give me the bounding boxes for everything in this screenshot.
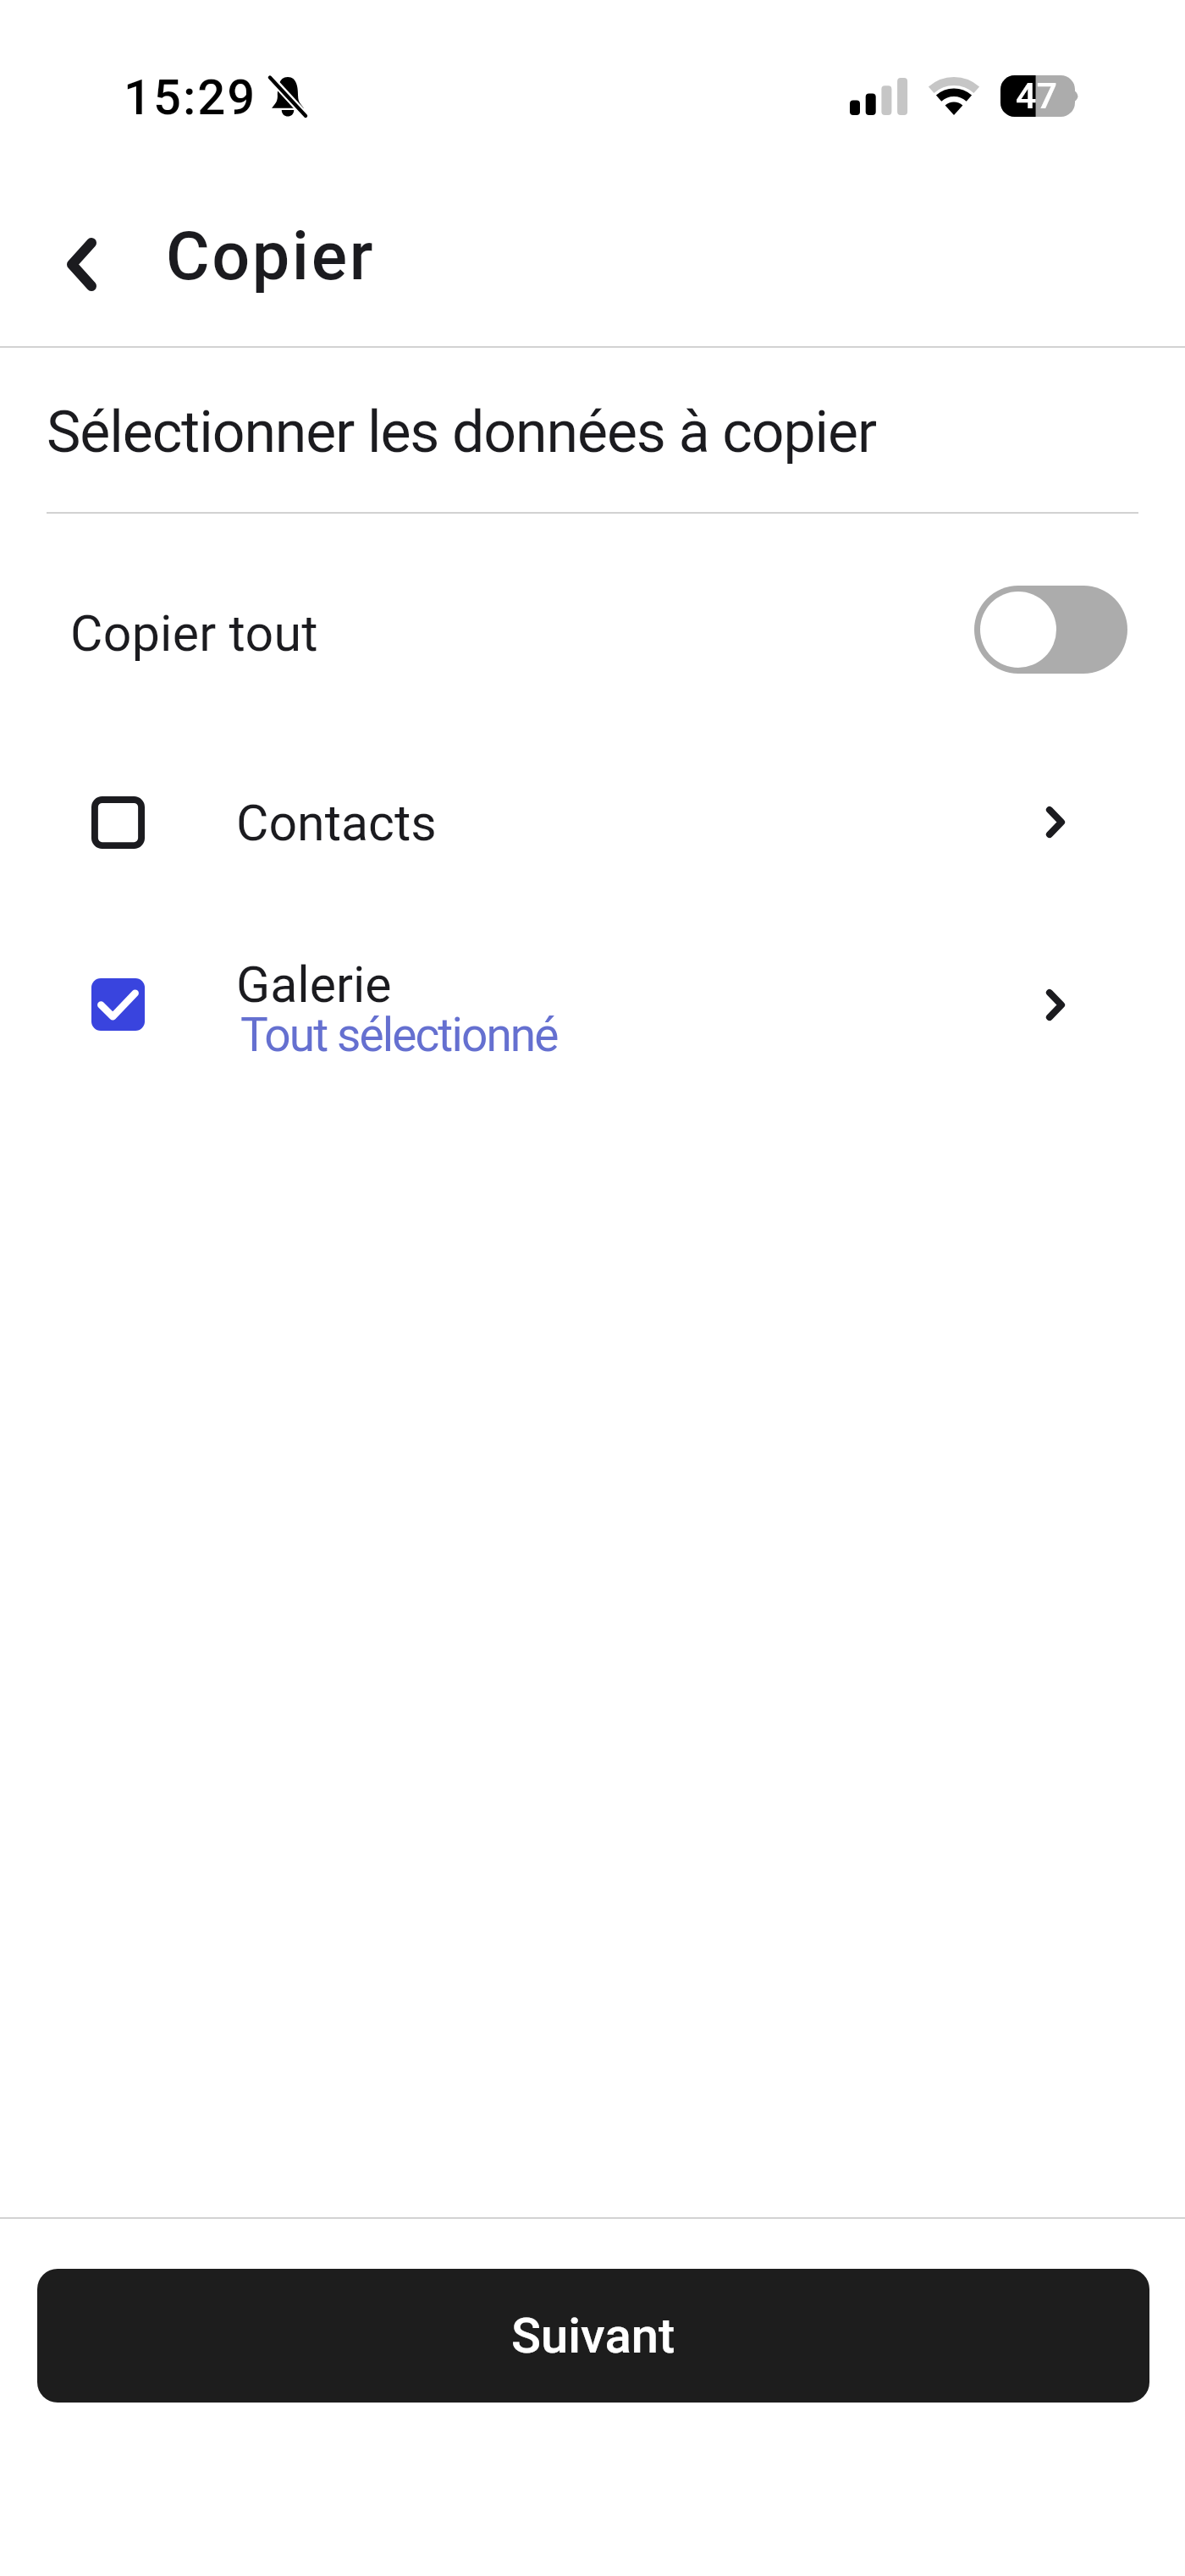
button[interactable]: Sélectionner Contacts xyxy=(0,758,1185,885)
staticText: Copier xyxy=(166,217,376,296)
button[interactable]: Sélectionner Galerie xyxy=(91,978,145,1031)
button[interactable]: Suivant xyxy=(37,2269,1149,2403)
staticText: 47 xyxy=(1016,74,1057,116)
staticText: Contacts xyxy=(236,794,437,852)
button[interactable]: Copier tout xyxy=(974,586,1127,674)
button[interactable]: Back xyxy=(30,215,132,313)
staticText: Tout sélectionné xyxy=(240,1008,558,1062)
staticText: Suivant xyxy=(511,2307,675,2364)
staticText: Sélectionner les données à copier xyxy=(47,399,876,466)
staticText: Copier tout xyxy=(70,604,318,663)
staticText: Galerie xyxy=(236,955,392,1014)
staticText: 15:29 xyxy=(124,69,257,126)
button[interactable]: Sélectionner Galerie xyxy=(0,941,1185,1110)
button[interactable]: Sélectionner Contacts xyxy=(91,796,145,849)
button[interactable]: Copier tout xyxy=(0,565,1185,694)
